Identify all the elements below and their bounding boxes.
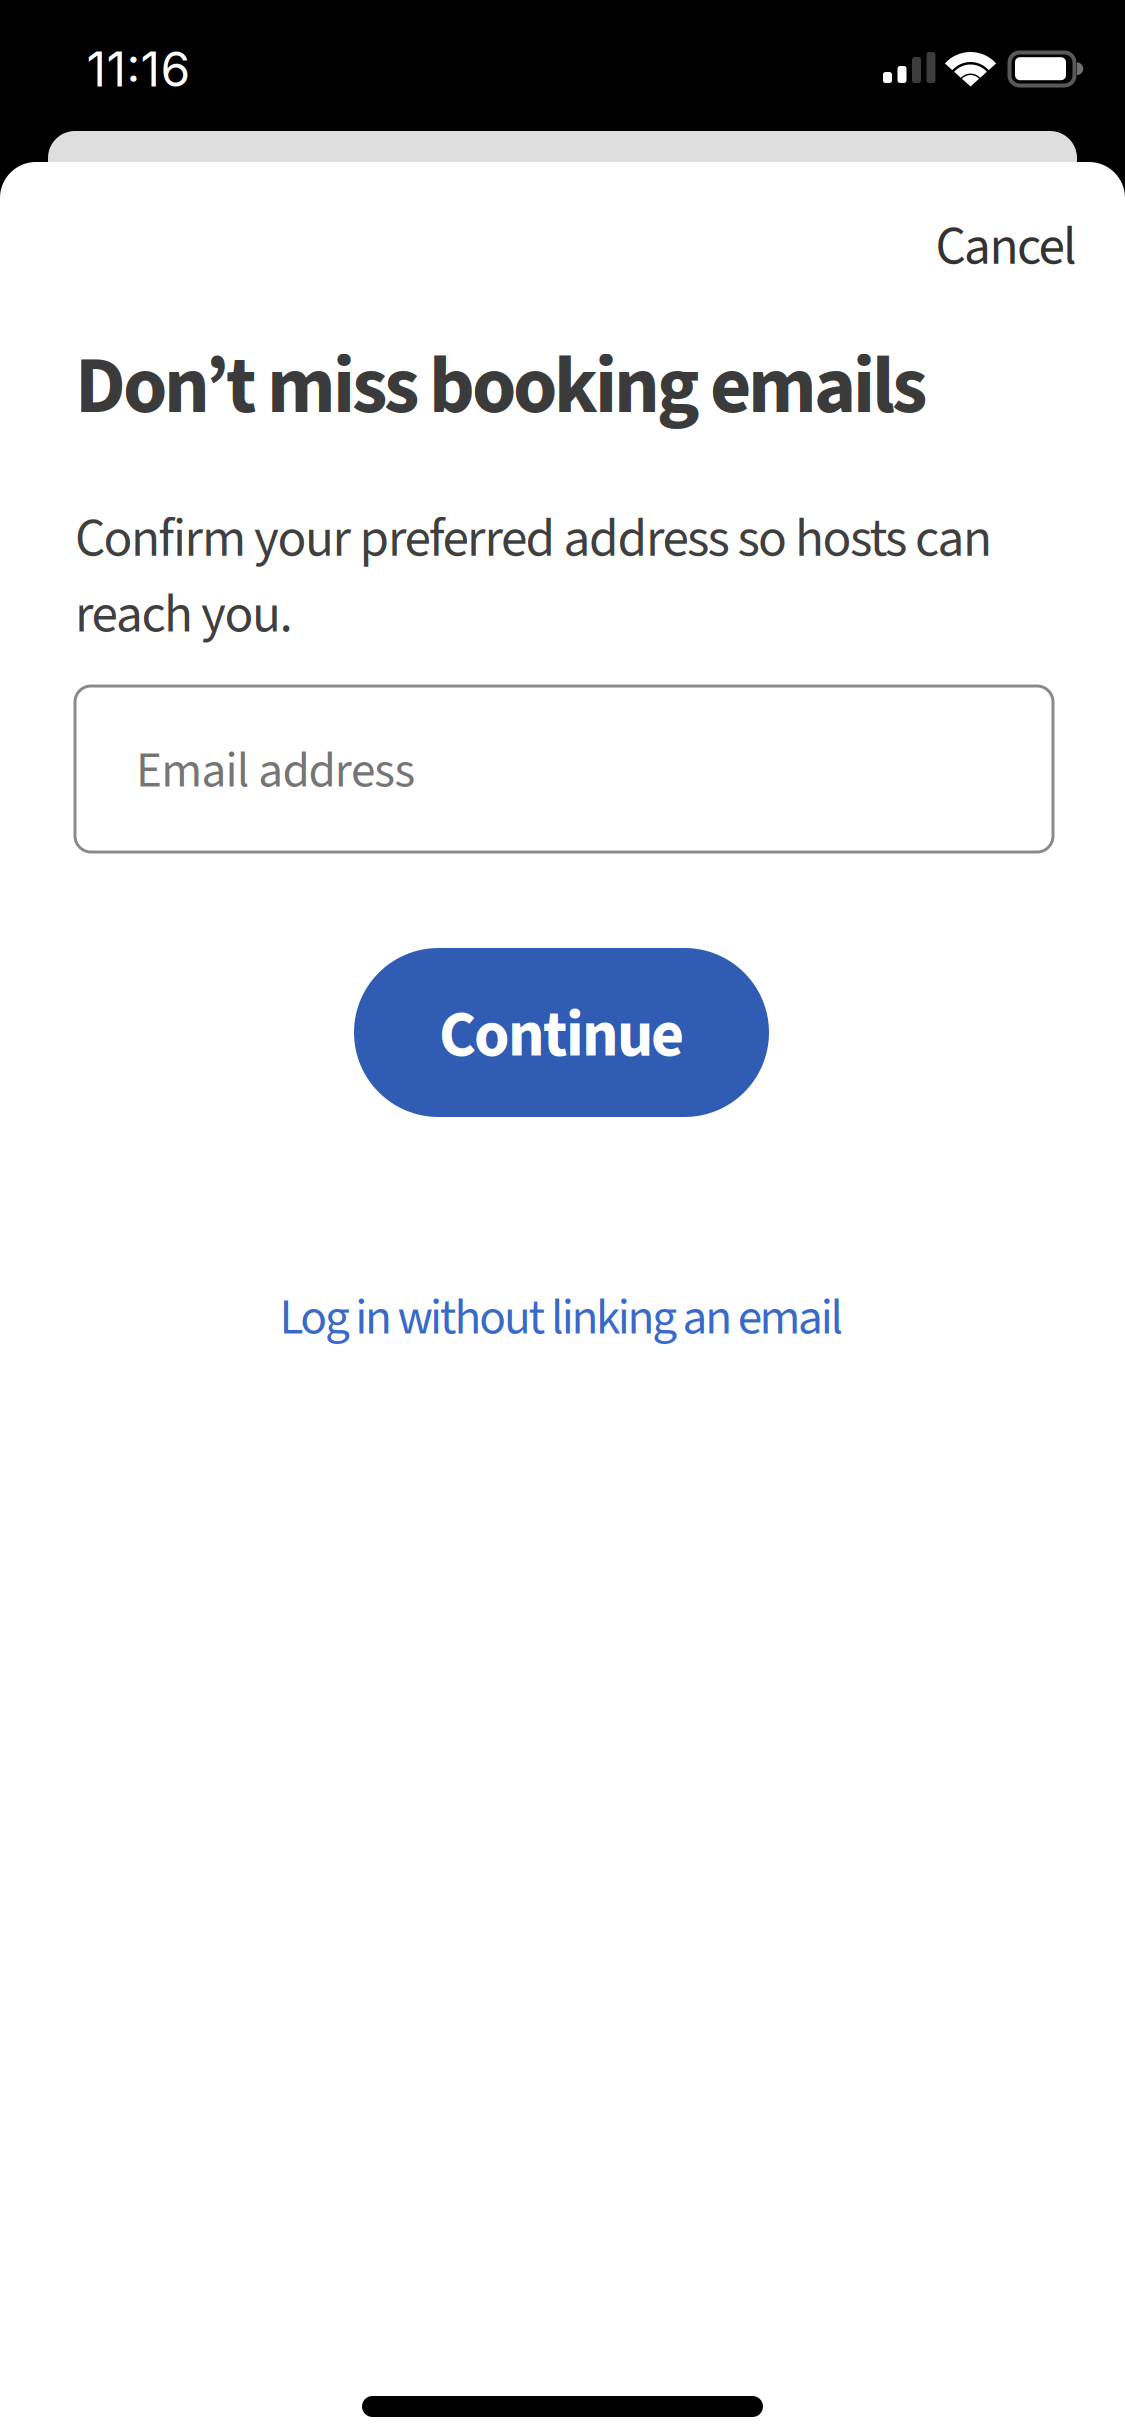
staticText: Confirm your preferred address so hosts … xyxy=(75,501,992,653)
staticText: 11:16 xyxy=(86,40,190,98)
staticText: Continue xyxy=(439,990,684,1081)
button[interactable]: Continue xyxy=(354,948,769,1117)
staticText: Don’t miss booking emails xyxy=(75,330,927,444)
button[interactable]: Cancel xyxy=(677,209,1077,285)
staticText: Log in without linking an email xyxy=(279,1283,843,1353)
staticText: Email address xyxy=(136,736,415,806)
button[interactable]: Log in without linking an email xyxy=(279,1283,843,1353)
button[interactable]: Email address xyxy=(75,686,1053,852)
staticText: Cancel xyxy=(935,209,1077,285)
